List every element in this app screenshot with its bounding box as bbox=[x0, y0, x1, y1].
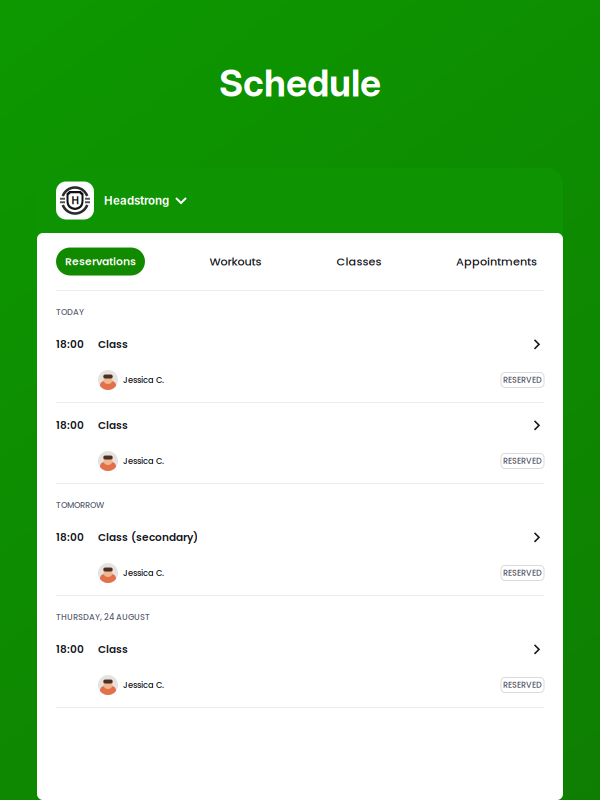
button[interactable]: RESERVED bbox=[501, 453, 544, 468]
button[interactable]: Reservations bbox=[56, 247, 145, 275]
button[interactable]: Appointments bbox=[458, 247, 535, 275]
staticText: Class (secondary) bbox=[98, 530, 198, 545]
button[interactable]: RESERVED bbox=[501, 372, 544, 387]
staticText: Class bbox=[98, 642, 128, 657]
button[interactable]: Workouts bbox=[145, 247, 326, 275]
button[interactable]: 18:00 bbox=[56, 515, 544, 551]
button[interactable]: H bbox=[37, 168, 563, 233]
staticText: Class bbox=[98, 337, 128, 352]
button[interactable]: RESERVED bbox=[501, 677, 544, 692]
staticText: Workouts bbox=[209, 254, 261, 269]
staticText: Jessica C. bbox=[123, 455, 164, 467]
staticText: Jessica C. bbox=[123, 567, 164, 579]
staticText: RESERVED bbox=[503, 567, 542, 579]
button[interactable]: 18:00 bbox=[56, 322, 544, 358]
staticText: TODAY bbox=[56, 306, 84, 318]
staticText: Class bbox=[98, 418, 128, 433]
staticText: RESERVED bbox=[503, 455, 542, 467]
staticText: Reservations bbox=[65, 254, 136, 269]
staticText: 18:00 bbox=[56, 642, 84, 657]
button[interactable]: RESERVED bbox=[501, 565, 544, 580]
staticText: THURSDAY, 24 AUGUST bbox=[56, 611, 150, 623]
staticText: Jessica C. bbox=[123, 679, 164, 691]
staticText: Appointments bbox=[456, 254, 537, 269]
staticText: Headstrong bbox=[104, 194, 169, 207]
button[interactable]: Classes bbox=[326, 247, 392, 275]
button[interactable]: 18:00 bbox=[56, 627, 544, 663]
staticText: RESERVED bbox=[503, 679, 542, 691]
staticText: RESERVED bbox=[503, 374, 542, 386]
staticText: Schedule bbox=[219, 61, 381, 105]
staticText: H bbox=[71, 194, 78, 207]
staticText: TOMORROW bbox=[56, 499, 104, 511]
staticText: Classes bbox=[336, 254, 381, 269]
staticText: Jessica C. bbox=[123, 374, 164, 386]
staticText: 18:00 bbox=[56, 337, 84, 352]
staticText: 18:00 bbox=[56, 530, 84, 545]
button[interactable]: 18:00 bbox=[56, 403, 544, 439]
staticText: 18:00 bbox=[56, 418, 84, 433]
